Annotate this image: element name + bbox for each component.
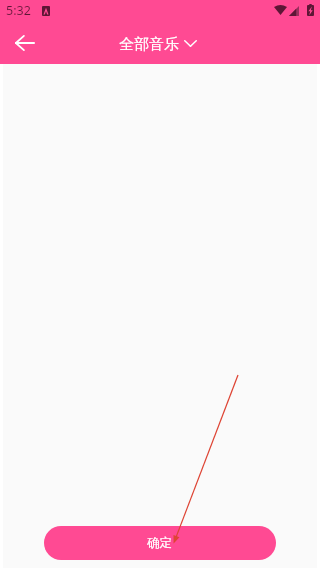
staticText: 全部音乐 xyxy=(119,35,179,54)
staticText: 5:32 xyxy=(6,2,31,19)
button[interactable]: 确定 xyxy=(44,526,276,560)
button[interactable]: 全部音乐 xyxy=(119,35,197,54)
staticText: 确定 xyxy=(147,535,172,551)
button[interactable]: Back xyxy=(5,24,45,64)
